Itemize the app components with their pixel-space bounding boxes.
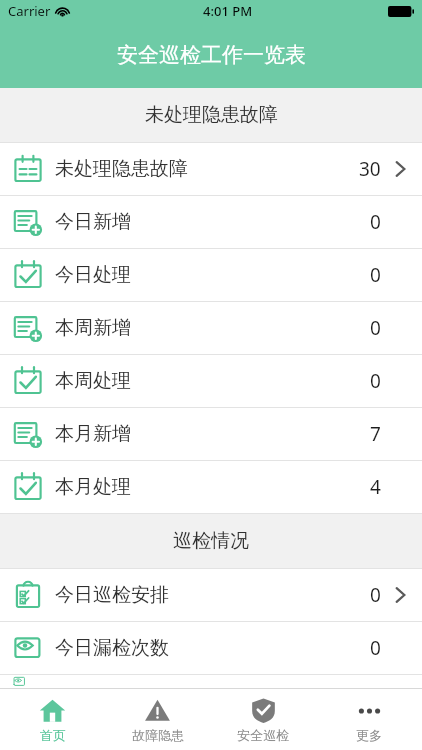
staticText: 0	[370, 368, 381, 394]
staticText: 更多	[356, 727, 382, 743]
staticText: Carrier	[8, 2, 51, 20]
button[interactable]: 故障隐患	[105, 689, 210, 750]
staticText: 未处理隐患故障	[145, 103, 278, 127]
staticText: 今日处理	[55, 263, 131, 287]
staticText: 安全巡检工作一览表	[117, 42, 306, 68]
button[interactable]: 安全巡检	[210, 689, 316, 750]
staticText: 巡检情况	[173, 529, 249, 553]
button[interactable]: 本月处理	[0, 461, 422, 514]
staticText: 0	[370, 209, 381, 235]
staticText: 今日漏检次数	[55, 636, 169, 660]
staticText: 首页	[40, 727, 66, 743]
button[interactable]: 本月新增	[0, 408, 422, 461]
staticText: 未处理隐患故障	[55, 157, 188, 181]
staticText: 本月新增	[55, 422, 131, 446]
staticText: 今日巡检安排	[55, 583, 169, 607]
button[interactable]: 今日处理	[0, 249, 422, 302]
staticText: 0	[370, 262, 381, 288]
staticText: 今日新增	[55, 210, 131, 234]
staticText: 7	[370, 421, 381, 447]
staticText: 30	[359, 156, 381, 182]
staticText: 0	[370, 635, 381, 661]
staticText: 故障隐患	[132, 727, 184, 743]
button[interactable]: 今日巡检安排	[0, 569, 422, 622]
staticText: 4	[370, 474, 381, 500]
button[interactable]	[0, 675, 422, 688]
button[interactable]: 更多	[316, 689, 422, 750]
button[interactable]: 未处理隐患故障	[0, 143, 422, 196]
staticText: 本月处理	[55, 475, 131, 499]
staticText: 本周处理	[55, 369, 131, 393]
button[interactable]: 本周处理	[0, 355, 422, 408]
staticText: 0	[370, 315, 381, 341]
staticText: 本周新增	[55, 316, 131, 340]
staticText: 4:01 PM	[203, 2, 253, 20]
staticText: 0	[370, 582, 381, 608]
button[interactable]: 今日漏检次数	[0, 622, 422, 675]
staticText: 安全巡检	[237, 727, 289, 743]
button[interactable]: 今日新增	[0, 196, 422, 249]
button[interactable]: 首页	[0, 689, 105, 750]
button[interactable]: 本周新增	[0, 302, 422, 355]
